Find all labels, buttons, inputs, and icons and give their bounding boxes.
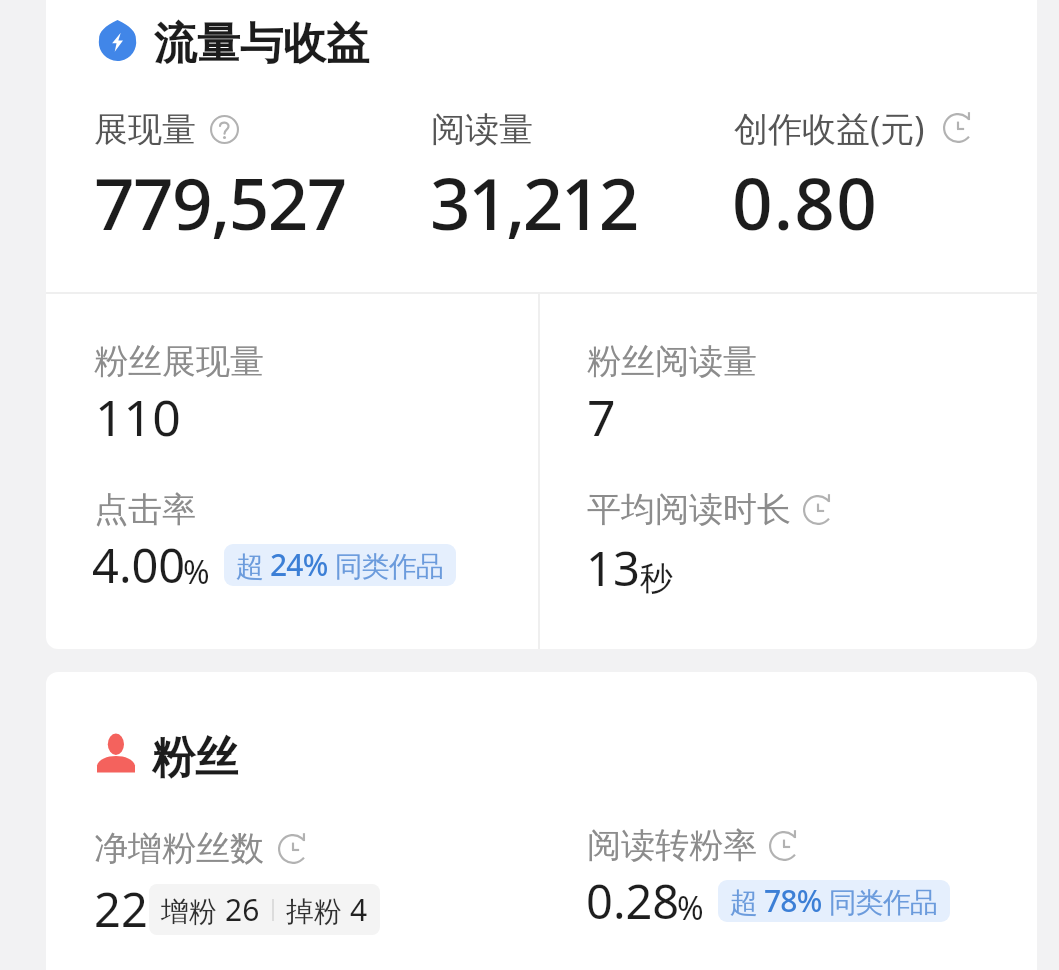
button[interactable] — [562, 472, 1012, 612]
staticText: 0.80 — [732, 154, 878, 251]
staticText: 13 — [586, 536, 640, 600]
button[interactable]: 增粉 — [149, 884, 380, 935]
staticText: 粉丝展现量 — [94, 340, 264, 383]
other: Updated periodically — [278, 834, 308, 864]
staticText: 创作收益(元) — [734, 105, 925, 151]
staticText: % — [183, 550, 210, 594]
staticText: 超 — [730, 882, 764, 920]
staticText: 阅读量 — [431, 108, 533, 151]
staticText: 同类作品 — [822, 882, 938, 920]
staticText: 0.28 — [586, 869, 680, 933]
staticText: 31,212 — [430, 154, 637, 251]
button[interactable] — [562, 810, 1012, 940]
staticText: 超 — [236, 546, 270, 584]
staticText: 7 — [587, 383, 616, 451]
other: Updated periodically — [943, 113, 973, 143]
staticText: % — [677, 886, 704, 930]
staticText: 平均阅读时长 — [587, 488, 791, 531]
button[interactable] — [408, 92, 708, 252]
other: Updated periodically — [803, 495, 833, 525]
staticText: 展现量 — [94, 108, 196, 151]
other: Followers — [96, 733, 136, 773]
button[interactable] — [712, 92, 1012, 252]
staticText: 掉粉 — [286, 891, 350, 929]
staticText: 粉丝 — [152, 731, 238, 785]
staticText: 流量与收益 — [154, 17, 369, 71]
staticText: 粉丝阅读量 — [587, 340, 757, 383]
button[interactable] — [72, 810, 522, 940]
staticText: 4.00 — [92, 533, 186, 597]
staticText: 26 — [225, 889, 260, 930]
staticText: 阅读转粉率 — [587, 824, 757, 867]
button[interactable] — [72, 472, 522, 612]
button[interactable]: 超 — [718, 880, 950, 922]
staticText: 4 — [350, 889, 368, 930]
staticText: 22 — [94, 877, 148, 941]
button[interactable] — [562, 324, 1012, 464]
staticText: 78% — [764, 880, 822, 921]
other: Updated periodically — [769, 831, 799, 861]
button[interactable]: Followers — [96, 731, 238, 785]
staticText: 点击率 — [94, 488, 196, 531]
staticText: 秒 — [640, 558, 673, 600]
other: Traffic — [96, 18, 139, 61]
button[interactable]: Traffic — [96, 12, 369, 66]
staticText: 净增粉丝数 — [94, 827, 264, 870]
button[interactable] — [72, 92, 392, 252]
other: More info — [210, 115, 239, 144]
staticText: 779,527 — [94, 154, 346, 251]
staticText: 110 — [95, 383, 181, 451]
staticText: 24% — [270, 544, 328, 585]
button[interactable]: 超 — [224, 544, 456, 586]
staticText: 同类作品 — [328, 546, 444, 584]
button[interactable] — [72, 324, 522, 464]
staticText: 增粉 — [161, 891, 225, 929]
